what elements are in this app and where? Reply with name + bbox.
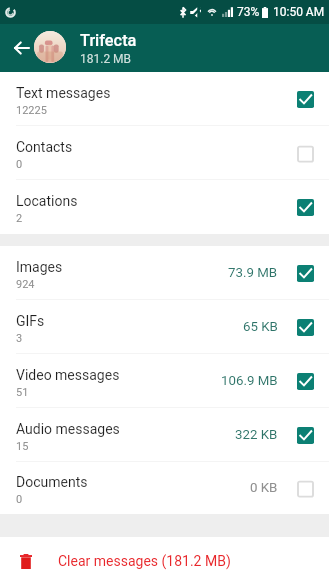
- staticText: Locations: [16, 193, 78, 209]
- button[interactable]: Text messages: [0, 72, 329, 126]
- staticText: 3: [16, 332, 23, 345]
- button[interactable]: Video messages: [0, 354, 329, 408]
- staticText: Trifecta: [80, 31, 137, 50]
- staticText: 12225: [16, 104, 47, 117]
- button[interactable]: Contacts: [0, 126, 329, 180]
- staticText: 0: [16, 158, 23, 171]
- staticText: 73.9 MB: [228, 265, 278, 281]
- button[interactable]: Clear messages (181.2 MB): [0, 537, 329, 585]
- staticText: Contacts: [16, 139, 73, 155]
- staticText: 10:50 AM: [273, 5, 325, 19]
- button[interactable]: Documents: [0, 462, 329, 514]
- staticText: 2: [16, 212, 23, 225]
- button[interactable]: Images: [0, 246, 329, 300]
- staticText: Images: [16, 259, 63, 275]
- staticText: Text messages: [16, 85, 111, 101]
- staticText: 0: [16, 493, 23, 506]
- staticText: Documents: [16, 474, 88, 490]
- staticText: 15: [16, 440, 29, 453]
- staticText: Video messages: [16, 367, 120, 383]
- staticText: Audio messages: [16, 421, 120, 437]
- button[interactable]: Audio messages: [0, 408, 329, 462]
- staticText: 181.2 MB: [80, 52, 132, 66]
- staticText: 106.9 MB: [221, 373, 278, 389]
- staticText: 65 KB: [243, 319, 278, 335]
- button[interactable]: Locations: [0, 180, 329, 234]
- staticText: 322 KB: [235, 427, 278, 443]
- button[interactable]: GIFs: [0, 300, 329, 354]
- staticText: 0 KB: [250, 480, 278, 496]
- staticText: Clear messages (181.2 MB): [58, 553, 231, 569]
- staticText: 51: [16, 386, 29, 399]
- staticText: 73%: [237, 5, 260, 19]
- button[interactable]: Back: [0, 24, 33, 72]
- staticText: GIFs: [16, 313, 45, 329]
- staticText: 924: [16, 278, 35, 291]
